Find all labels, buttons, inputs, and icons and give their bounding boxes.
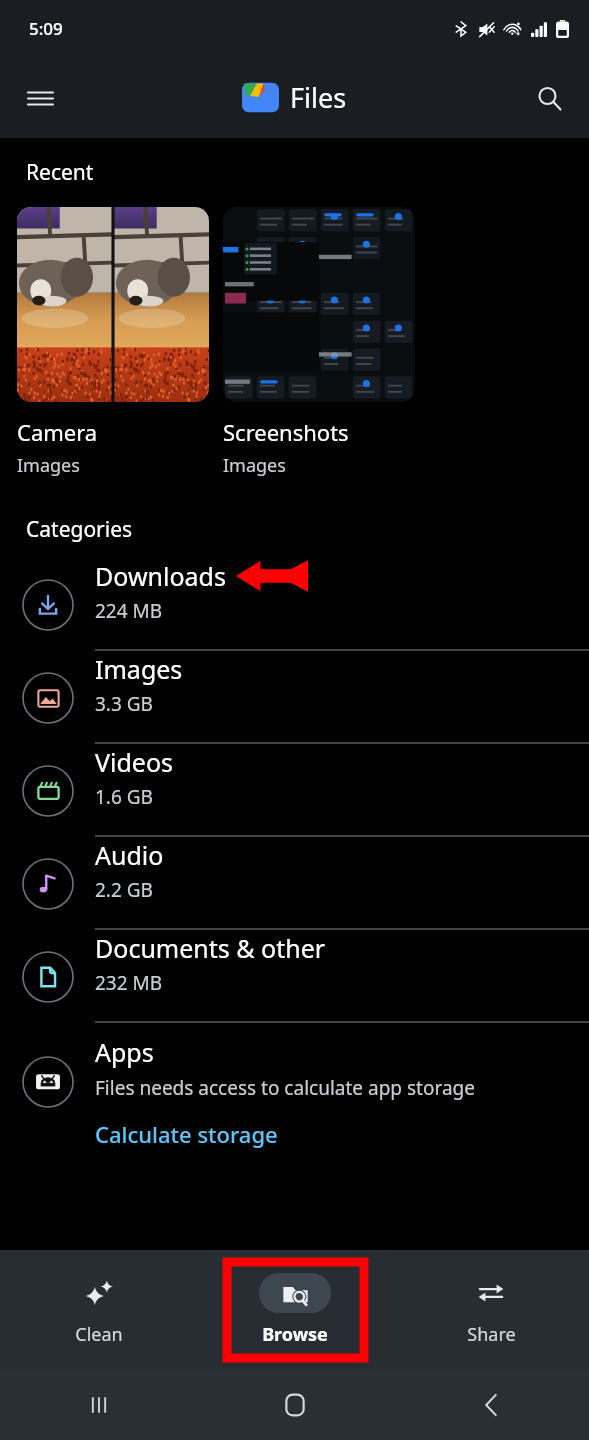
- staticText: Clean: [75, 1322, 123, 1347]
- button[interactable]: Open navigation menu: [16, 74, 64, 122]
- staticText: Camera: [17, 417, 98, 447]
- staticText: Share: [467, 1322, 516, 1347]
- button[interactable]: Recents: [0, 1370, 197, 1440]
- button[interactable]: Apps: [0, 1023, 589, 1183]
- button[interactable]: Screenshots: [223, 207, 415, 478]
- staticText: 5:09: [29, 17, 63, 40]
- button[interactable]: Search: [525, 74, 573, 122]
- staticText: 1.6 GB: [95, 784, 153, 810]
- staticText: Recent: [26, 158, 94, 187]
- staticText: Calculate storage: [95, 1119, 278, 1149]
- staticText: Categories: [26, 515, 133, 544]
- button[interactable]: Documents & other: [0, 930, 589, 1023]
- staticText: 2.2 GB: [95, 877, 153, 903]
- staticText: 224 MB: [95, 598, 163, 624]
- staticText: Images: [95, 652, 183, 686]
- staticText: Files: [290, 79, 347, 116]
- staticText: Downloads: [95, 559, 226, 593]
- staticText: Images: [17, 453, 80, 478]
- button[interactable]: Videos: [0, 744, 589, 837]
- button[interactable]: Downloads: [0, 558, 589, 651]
- staticText: 3.3 GB: [95, 691, 153, 717]
- button[interactable]: Browse: [253, 1273, 337, 1347]
- staticText: 232 MB: [95, 970, 163, 996]
- staticText: Videos: [95, 745, 174, 779]
- staticText: Documents & other: [95, 931, 326, 965]
- button[interactable]: Share: [449, 1273, 533, 1347]
- staticText: Browse: [262, 1322, 328, 1347]
- button[interactable]: Images: [0, 651, 589, 744]
- button[interactable]: Clean: [57, 1273, 141, 1347]
- button[interactable]: Back: [393, 1370, 589, 1440]
- button[interactable]: Calculate storage: [95, 1119, 278, 1149]
- button[interactable]: Audio: [0, 837, 589, 930]
- staticText: Audio: [95, 838, 164, 872]
- button[interactable]: Camera: [17, 207, 209, 478]
- staticText: Files needs access to calculate app stor…: [95, 1075, 475, 1101]
- staticText: Apps: [95, 1035, 154, 1069]
- staticText: Images: [223, 453, 286, 478]
- staticText: Screenshots: [223, 417, 349, 447]
- button[interactable]: Home: [197, 1370, 393, 1440]
